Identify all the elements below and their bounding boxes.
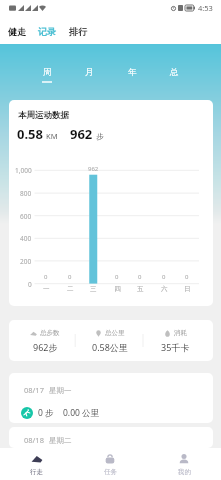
staticText: 一	[43, 285, 50, 293]
staticText: 1,000	[15, 166, 32, 175]
staticText: 本周运动数据	[18, 110, 69, 121]
staticText: 六	[161, 285, 168, 293]
staticText: 0	[44, 273, 48, 281]
button[interactable]: 总	[159, 64, 189, 86]
staticText: 总步数	[40, 329, 60, 337]
staticText: 月	[85, 67, 94, 78]
button[interactable]: 总步数	[13, 320, 77, 361]
staticText: 0	[115, 273, 119, 281]
staticText: 健走	[8, 26, 26, 37]
staticText: 0.00 公里	[63, 407, 100, 419]
button[interactable]: 健走	[7, 21, 27, 42]
staticText: 步	[96, 132, 104, 141]
staticText: 962步	[33, 341, 58, 353]
staticText: 200	[20, 257, 32, 266]
staticText: 0.58	[17, 125, 43, 143]
staticText: 日	[184, 285, 191, 293]
staticText: 0 步	[38, 407, 54, 419]
staticText: 0.58公里	[92, 341, 128, 353]
staticText: 35千卡	[161, 341, 190, 353]
staticText: 记录	[38, 26, 56, 37]
staticText: 任务	[104, 468, 117, 476]
staticText: 五	[137, 285, 144, 293]
staticText: 总	[170, 67, 179, 78]
staticText: 962	[70, 125, 93, 143]
staticText: 行走	[30, 468, 43, 476]
staticText: 二	[67, 285, 74, 293]
button[interactable]	[9, 373, 213, 423]
staticText: 星期一	[49, 386, 72, 395]
staticText: 四	[114, 285, 121, 293]
button[interactable]: 任务	[73, 448, 147, 480]
staticText: 600	[20, 212, 32, 221]
staticText: 消耗	[174, 329, 187, 337]
staticText: 我的	[178, 468, 191, 476]
staticText: 排行	[69, 26, 87, 37]
staticText: 年	[128, 67, 137, 78]
staticText: 08/17	[24, 385, 44, 395]
staticText: 总公里	[105, 329, 125, 337]
button[interactable]: 记录	[37, 21, 57, 42]
staticText: 08/18	[24, 435, 44, 445]
staticText: 0	[185, 273, 189, 281]
button[interactable]	[9, 427, 213, 448]
staticText: 三	[90, 285, 97, 293]
staticText: 800	[20, 189, 32, 198]
staticText: 周	[43, 67, 52, 78]
staticText: 4:53	[198, 3, 213, 13]
staticText: 0	[28, 280, 32, 289]
staticText: 400	[20, 234, 32, 243]
button[interactable]: 消耗	[143, 320, 207, 361]
button[interactable]: 周	[32, 64, 62, 86]
button[interactable]: 行走	[0, 448, 73, 480]
staticText: 星期二	[49, 436, 72, 445]
staticText: KM	[46, 131, 58, 141]
staticText: 962	[88, 165, 99, 173]
button[interactable]: 排行	[68, 21, 88, 42]
button[interactable]: 年	[117, 64, 147, 86]
staticText: 0	[138, 273, 142, 281]
button[interactable]: 总公里	[78, 320, 142, 361]
staticText: 0	[68, 273, 72, 281]
button[interactable]: 我的	[147, 448, 221, 480]
button[interactable]: 月	[74, 64, 104, 86]
staticText: 0	[162, 273, 166, 281]
